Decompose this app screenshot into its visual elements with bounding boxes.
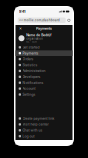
staticText: 9:41 [19, 9, 25, 14]
staticText: Account [22, 87, 35, 91]
staticText: ✕ [19, 26, 22, 30]
button[interactable]: Visit help center [15, 122, 72, 127]
staticText: Get started [22, 45, 39, 49]
button[interactable]: Orders [15, 56, 72, 62]
staticText: Name de Bedrijf [26, 33, 51, 37]
staticText: Payments [36, 26, 52, 31]
staticText: Orders [22, 57, 33, 61]
staticText: Statistics [22, 63, 37, 67]
staticText: Create payment link [22, 116, 54, 120]
button[interactable]: Log out [15, 133, 72, 139]
staticText: Log out [22, 134, 34, 138]
staticText: Notifications [22, 81, 43, 85]
staticText: Visit help center [22, 122, 48, 126]
button[interactable]: Settings [15, 92, 72, 97]
staticText: Organisation [26, 37, 43, 40]
button[interactable]: Name de Bedrijf [15, 32, 72, 44]
staticText: Developers [22, 75, 40, 79]
staticText: Chat with us [22, 128, 42, 132]
button[interactable]: Administration [15, 68, 72, 74]
button[interactable]: Create payment link [15, 116, 72, 121]
button[interactable]: Reload [67, 18, 71, 23]
staticText: Administration [22, 69, 45, 73]
staticText: AA [19, 19, 23, 22]
button[interactable]: mollie.com/dashboard [18, 18, 66, 23]
button[interactable]: Close [18, 26, 23, 31]
button[interactable]: Developers [15, 74, 72, 80]
button[interactable]: Notifications [15, 80, 72, 85]
button[interactable]: Get started [15, 44, 72, 50]
button[interactable]: Account [15, 86, 72, 91]
button[interactable]: Payments [15, 50, 72, 56]
button[interactable]: Chat with us [15, 127, 72, 133]
staticText: NL · EUR [26, 40, 37, 43]
button[interactable]: Statistics [15, 62, 72, 68]
staticText: mollie.com/dashboard [24, 18, 60, 22]
staticText: Payments [22, 51, 38, 55]
staticText: Settings [22, 92, 35, 96]
